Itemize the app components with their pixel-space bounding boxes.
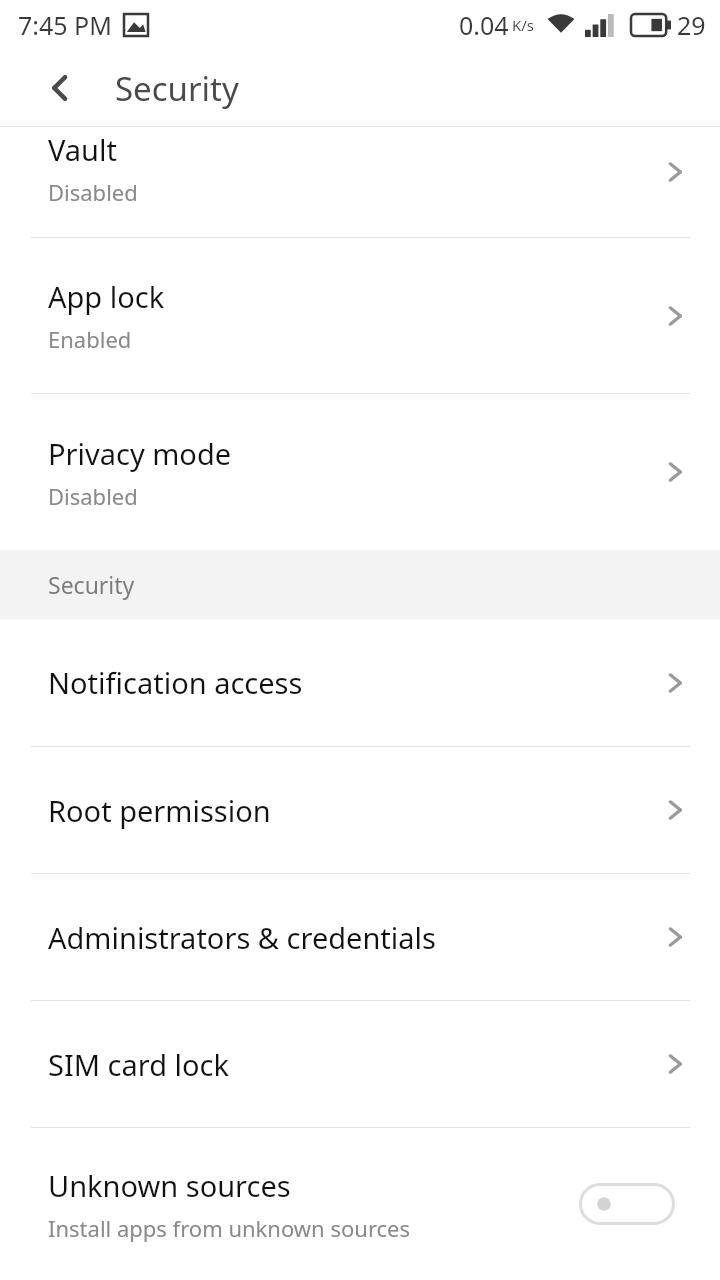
button[interactable]: Root permission: [0, 747, 720, 873]
staticText: 29: [677, 8, 706, 42]
staticText: Security: [115, 66, 239, 111]
button[interactable]: SIM card lock: [0, 1001, 720, 1127]
staticText: 7:45 PM: [18, 8, 112, 42]
button[interactable]: Privacy mode: [0, 394, 720, 550]
button[interactable]: Unknown sources toggle: [579, 1183, 675, 1225]
button[interactable]: Vault: [0, 127, 720, 237]
button[interactable]: App lock: [0, 238, 720, 393]
staticText: Security: [48, 569, 135, 600]
button[interactable]: Back: [34, 62, 86, 114]
staticText: K/s: [512, 15, 535, 35]
staticText: 0.04: [459, 8, 509, 42]
staticText: SIM card lock: [48, 1045, 229, 1084]
button[interactable]: Administrators & credentials: [0, 874, 720, 1000]
button[interactable]: Unknown sources: [0, 1128, 720, 1280]
staticText: Enabled: [48, 324, 132, 354]
staticText: App lock: [48, 277, 165, 316]
staticText: Install apps from unknown sources: [48, 1213, 411, 1243]
staticText: Disabled: [48, 177, 138, 207]
staticText: Administrators & credentials: [48, 918, 436, 957]
staticText: Disabled: [48, 481, 138, 511]
button[interactable]: Notification access: [0, 619, 720, 746]
staticText: Notification access: [48, 663, 303, 702]
staticText: Unknown sources: [48, 1166, 291, 1205]
staticText: Privacy mode: [48, 434, 232, 473]
staticText: Vault: [48, 130, 117, 169]
staticText: Root permission: [48, 791, 271, 830]
